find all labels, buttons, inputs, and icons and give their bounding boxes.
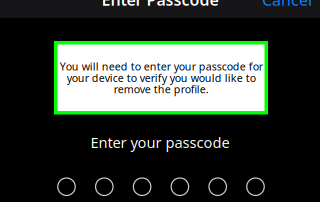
staticText: Enter your passcode — [90, 132, 229, 152]
staticText: You will need to enter your passcode for… — [59, 59, 262, 96]
staticText: Cancel — [262, 0, 312, 10]
button[interactable]: Cancel — [262, 0, 320, 10]
staticText: Enter Passcode — [101, 0, 218, 10]
